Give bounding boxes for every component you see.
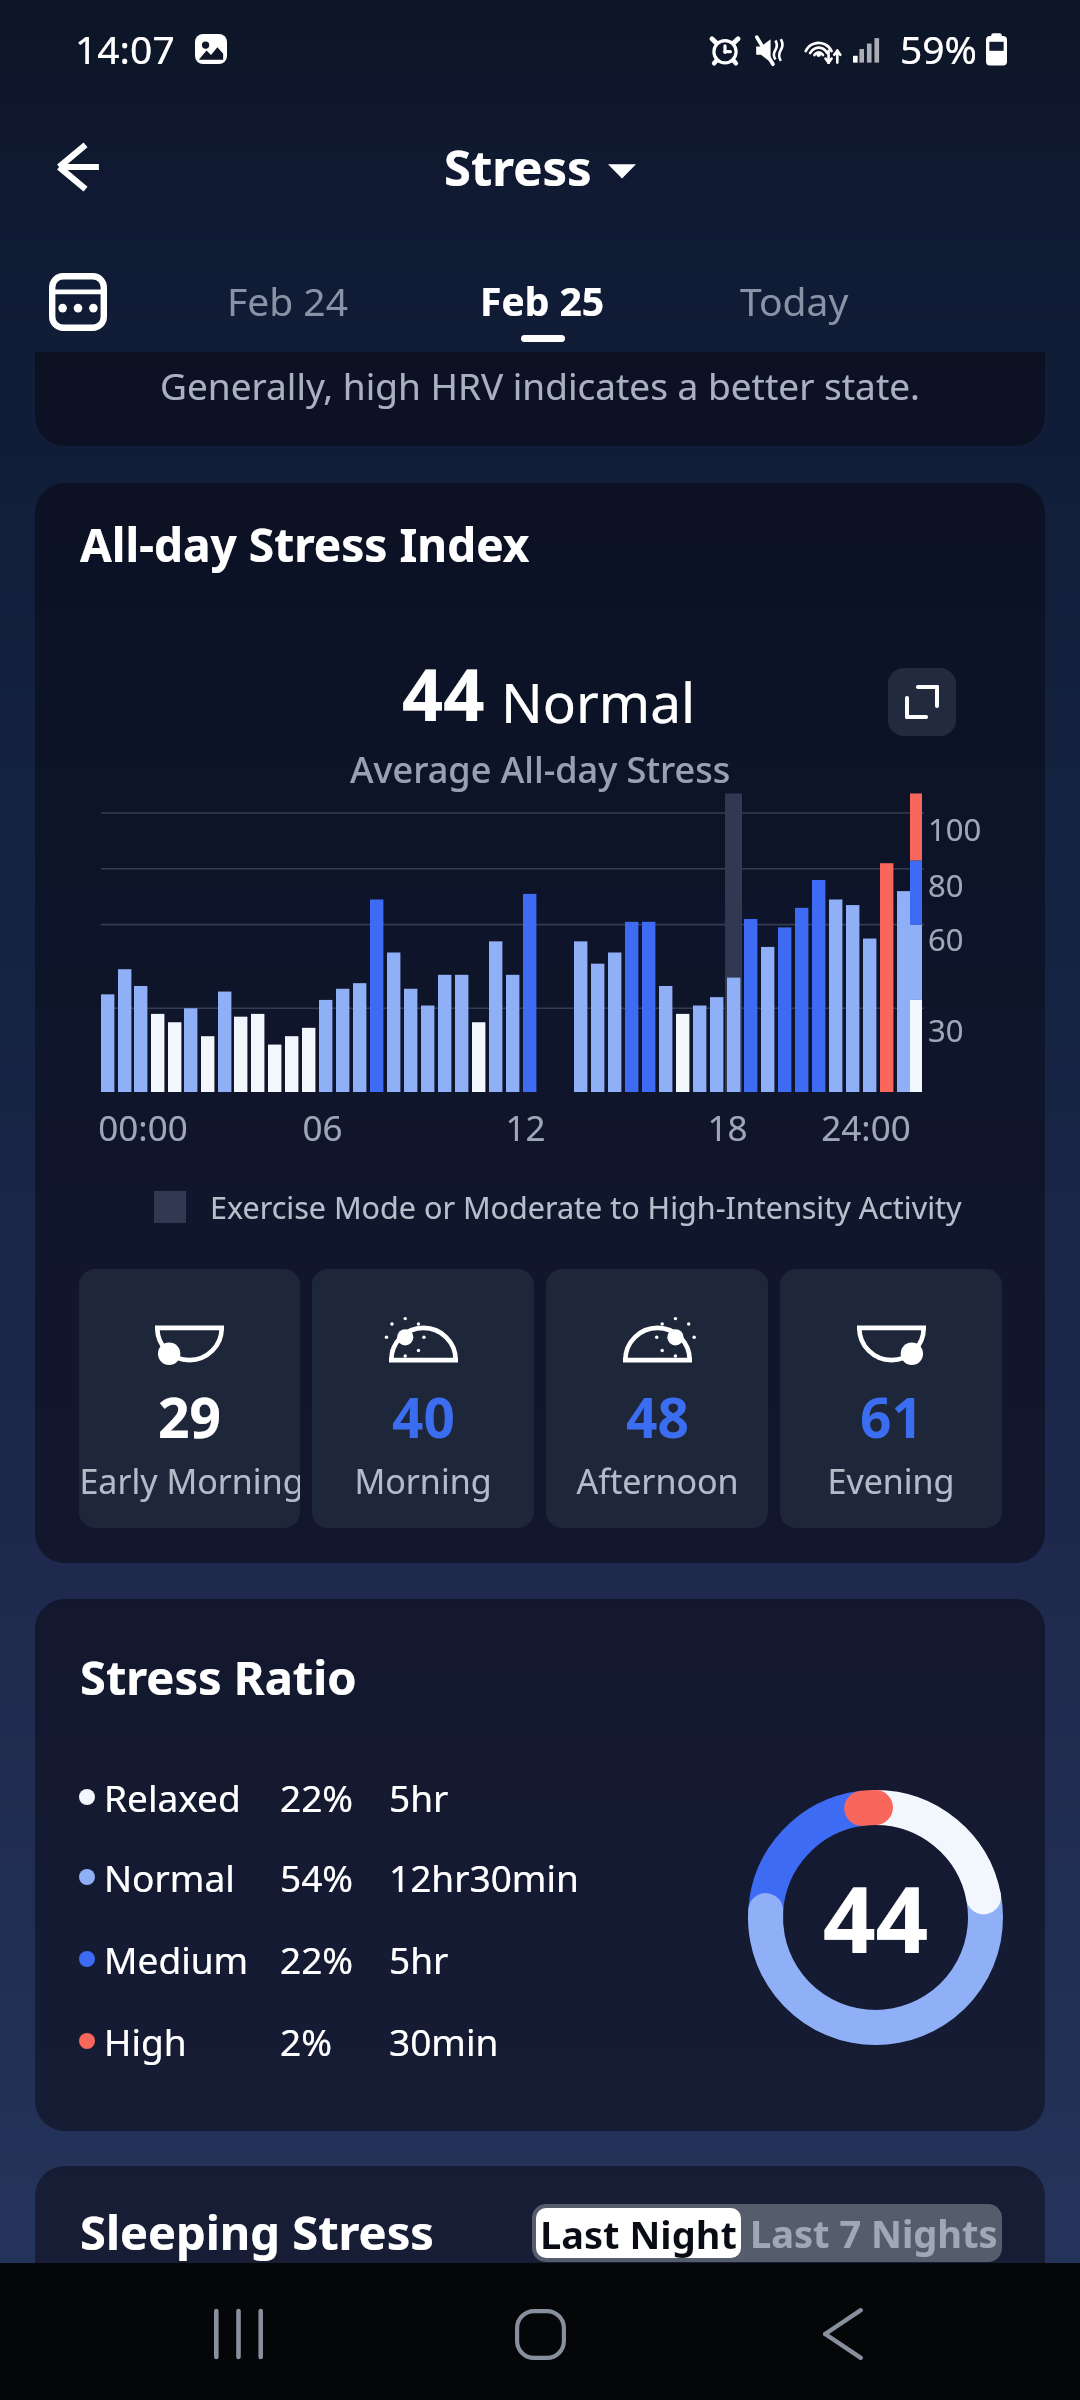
button[interactable]: Today: [684, 250, 904, 360]
staticText: Average All-day Stress: [350, 745, 731, 794]
button[interactable]: Back: [36, 124, 122, 210]
staticText: Relaxed: [104, 1772, 241, 1822]
button[interactable]: Last 7 Nights: [745, 2204, 1002, 2262]
staticText: Feb 25: [480, 274, 605, 327]
staticText: Medium: [104, 1934, 249, 1984]
staticText: 2%: [280, 2016, 332, 2066]
staticText: 61: [860, 1379, 923, 1454]
button[interactable]: 29: [79, 1269, 300, 1528]
staticText: Stress: [444, 134, 592, 201]
staticText: 40: [392, 1379, 455, 1454]
staticText: 5hr: [389, 1772, 449, 1822]
staticText: 14:07: [75, 22, 175, 75]
staticText: Morning: [354, 1458, 492, 1504]
button[interactable]: 48: [546, 1269, 768, 1528]
staticText: 22%: [280, 1934, 354, 1984]
staticText: Last 7 Nights: [750, 2207, 998, 2259]
staticText: 00:00: [98, 1104, 188, 1152]
staticText: Today: [740, 274, 849, 327]
staticText: 12hr30min: [389, 1852, 579, 1902]
button[interactable]: 61: [780, 1269, 1002, 1528]
staticText: Normal: [501, 664, 696, 739]
button[interactable]: Calendar: [30, 254, 126, 350]
button[interactable]: Recent apps: [183, 2279, 293, 2389]
staticText: 59%: [900, 22, 978, 75]
staticText: Last Night: [540, 2208, 737, 2258]
staticText: 22%: [280, 1772, 354, 1822]
button[interactable]: Back: [788, 2279, 898, 2389]
staticText: 44: [823, 1855, 929, 1980]
staticText: Evening: [827, 1458, 955, 1504]
staticText: Generally, high HRV indicates a better s…: [160, 360, 921, 410]
staticText: 44: [402, 644, 485, 742]
button[interactable]: Expand chart: [888, 668, 956, 736]
staticText: Stress Ratio: [80, 1645, 357, 1709]
staticText: 29: [158, 1379, 221, 1454]
button[interactable]: Feb 25: [432, 250, 652, 360]
staticText: 48: [626, 1379, 689, 1454]
staticText: 30min: [389, 2016, 499, 2066]
staticText: 80: [928, 864, 964, 906]
staticText: 24:00: [821, 1104, 911, 1152]
staticText: High: [104, 2016, 187, 2066]
staticText: 18: [707, 1104, 748, 1152]
button[interactable]: Stress: [444, 134, 636, 201]
button[interactable]: Feb 24: [177, 250, 397, 360]
button[interactable]: 40: [312, 1269, 534, 1528]
button[interactable]: Generally, high HRV indicates a better s…: [35, 352, 1045, 446]
staticText: 06: [302, 1104, 343, 1152]
staticText: 54%: [280, 1852, 354, 1902]
staticText: 60: [928, 918, 964, 960]
staticText: All-day Stress Index: [80, 513, 530, 576]
staticText: Normal: [104, 1852, 235, 1902]
button[interactable]: Home: [485, 2279, 595, 2389]
staticText: 30: [928, 1009, 964, 1051]
staticText: Early Morning: [79, 1458, 300, 1504]
button[interactable]: Last Night: [536, 2208, 741, 2258]
staticText: Sleeping Stress: [80, 2200, 434, 2264]
staticText: Afternoon: [576, 1458, 739, 1504]
staticText: 5hr: [389, 1934, 449, 1984]
staticText: 12: [505, 1104, 546, 1152]
staticText: Exercise Mode or Moderate to High-Intens…: [210, 1186, 962, 1228]
staticText: Feb 24: [227, 274, 348, 327]
staticText: 100: [928, 808, 982, 850]
